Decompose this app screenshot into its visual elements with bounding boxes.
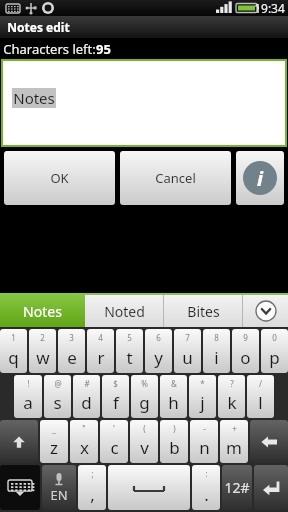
button[interactable]: $ — [102, 375, 129, 418]
staticText: 1 — [11, 332, 16, 343]
staticText: ; — [91, 468, 94, 479]
button[interactable]: 5 — [116, 329, 143, 373]
staticText: q — [8, 346, 19, 369]
staticText: 9 — [243, 332, 248, 343]
button[interactable]: % — [131, 375, 158, 418]
button[interactable]: ( — [130, 420, 158, 463]
staticText: f — [113, 391, 119, 414]
button[interactable]: & — [160, 375, 187, 418]
staticText: / — [259, 378, 262, 389]
button[interactable]: ) — [160, 420, 188, 463]
staticText: u — [182, 346, 193, 369]
staticText: i — [257, 165, 263, 192]
staticText: Characters left: — [3, 40, 96, 58]
staticText: ) — [173, 423, 176, 434]
staticText: 6 — [156, 332, 161, 343]
button[interactable]: : — [192, 465, 220, 510]
staticText: : — [205, 468, 208, 479]
button[interactable]: Show more suggestions — [243, 295, 288, 327]
staticText: & — [171, 378, 177, 389]
staticText: * — [200, 378, 205, 389]
staticText: w — [36, 346, 50, 369]
staticText: 0 — [272, 332, 277, 343]
staticText: Notes — [13, 88, 55, 108]
staticText: r — [97, 346, 105, 369]
staticText: @ — [54, 378, 62, 389]
button[interactable]: Hide keyboard — [0, 465, 40, 510]
staticText: " — [82, 423, 86, 434]
button[interactable]: ' — [100, 420, 128, 463]
button[interactable]: _ — [40, 420, 68, 463]
staticText: a — [23, 391, 33, 414]
button[interactable]: * — [189, 375, 216, 418]
staticText: t — [126, 346, 133, 369]
button[interactable]: @ — [44, 375, 71, 418]
staticText: l — [258, 391, 263, 414]
staticText: 12# — [224, 478, 250, 497]
button[interactable]: / — [247, 375, 274, 418]
button[interactable]: Bites — [164, 295, 242, 327]
staticText: ! — [27, 378, 30, 389]
staticText: s — [53, 391, 62, 414]
staticText: 7 — [185, 332, 190, 343]
staticText: ? — [230, 378, 234, 389]
button[interactable]: 9 — [232, 329, 259, 373]
button[interactable]: Notes — [3, 61, 285, 145]
button[interactable]: Space — [108, 465, 190, 510]
button[interactable]: " — [70, 420, 98, 463]
staticText: 19:34 — [254, 0, 285, 16]
staticText: 2 — [40, 332, 45, 343]
staticText: ( — [143, 423, 146, 434]
button[interactable]: OK — [4, 151, 115, 205]
staticText: $ — [113, 378, 118, 389]
button[interactable]: Notes — [0, 295, 85, 327]
button[interactable]: Voice input, language EN — [42, 465, 76, 510]
staticText: , — [90, 483, 95, 506]
button[interactable]: Info — [236, 151, 284, 205]
button[interactable]: - — [190, 420, 218, 463]
button[interactable]: 3 — [58, 329, 85, 373]
staticText: Bites — [187, 302, 220, 321]
button[interactable]: 7 — [174, 329, 201, 373]
staticText: j — [200, 391, 205, 414]
staticText: . — [204, 483, 209, 506]
button[interactable]: 6 — [145, 329, 172, 373]
button[interactable]: ; — [78, 465, 106, 510]
button[interactable]: 4 — [87, 329, 114, 373]
button[interactable]: Enter — [254, 465, 288, 510]
button[interactable]: 0 — [261, 329, 288, 373]
button[interactable]: ! — [14, 375, 42, 418]
button[interactable]: Noted — [85, 295, 163, 327]
staticText: c — [110, 436, 119, 459]
staticText: 4 — [98, 332, 103, 343]
staticText: h — [168, 391, 179, 414]
button[interactable]: 12# — [222, 465, 252, 510]
button[interactable]: Cancel — [120, 151, 231, 205]
staticText: Noted — [104, 302, 145, 321]
button[interactable]: 1 — [0, 329, 27, 373]
button[interactable]: 8 — [203, 329, 230, 373]
staticText: d — [81, 391, 92, 414]
staticText: p — [269, 346, 280, 369]
staticText: y — [154, 346, 163, 369]
staticText: % — [141, 378, 148, 389]
staticText: v — [140, 436, 149, 459]
staticText: Notes — [23, 302, 62, 321]
staticText: k — [227, 391, 237, 414]
staticText: # — [84, 378, 90, 389]
staticText: 5 — [127, 332, 132, 343]
staticText: g — [139, 391, 150, 414]
button[interactable]: 2 — [29, 329, 56, 373]
staticText: 8 — [214, 332, 219, 343]
button[interactable]: + — [220, 420, 248, 463]
staticText: o — [240, 346, 251, 369]
button[interactable]: # — [73, 375, 100, 418]
staticText: b — [169, 436, 180, 459]
staticText: _ — [52, 423, 56, 434]
button[interactable]: Backspace — [250, 420, 288, 463]
staticText: OK — [50, 169, 69, 187]
staticText: ' — [113, 423, 115, 434]
staticText: m — [226, 436, 242, 459]
button[interactable]: ? — [218, 375, 245, 418]
button[interactable]: Shift — [0, 420, 38, 463]
